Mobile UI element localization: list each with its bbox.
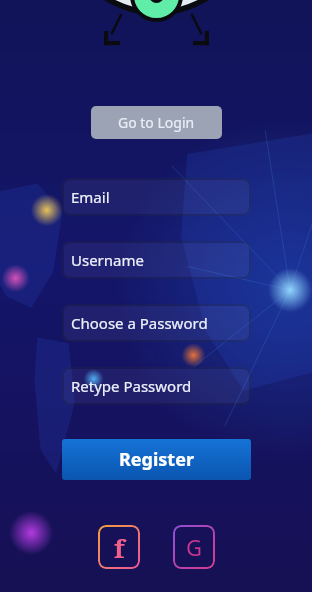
button[interactable]: Username [62, 241, 251, 279]
staticText: Choose a Password [71, 313, 208, 333]
button[interactable]: Retype Password [62, 367, 251, 405]
button[interactable]: Choose a Password [62, 304, 251, 342]
staticText: G [186, 532, 203, 562]
staticText: Go to Login [118, 113, 195, 132]
staticText: Email [71, 187, 110, 207]
button[interactable]: Go to Login [91, 106, 222, 139]
button[interactable]: Sign in with Google [173, 525, 215, 569]
button[interactable]: Sign in with Facebook [98, 525, 140, 569]
staticText: Register [119, 447, 194, 472]
button[interactable]: Email [62, 178, 251, 216]
button[interactable]: Register [62, 439, 251, 480]
staticText: Retype Password [71, 376, 192, 396]
staticText: Username [71, 250, 144, 270]
staticText: f [114, 530, 125, 565]
